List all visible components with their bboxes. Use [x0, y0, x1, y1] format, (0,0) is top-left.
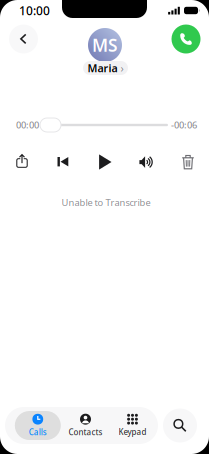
button[interactable]: Call	[171, 24, 200, 53]
button[interactable]: Delete	[173, 148, 203, 176]
staticText: Keypad	[118, 427, 146, 437]
button[interactable]: Contacts	[62, 411, 108, 440]
button[interactable]: Maria	[83, 61, 128, 75]
staticText: Maria	[87, 61, 117, 75]
button[interactable]: Back	[9, 24, 38, 53]
staticText: 10:00	[19, 2, 50, 18]
button[interactable]: Share	[7, 147, 37, 175]
button[interactable]: Play	[90, 148, 120, 176]
button[interactable]: Keypad	[109, 411, 155, 440]
button[interactable]: Speaker	[131, 148, 161, 176]
button[interactable]: Previous	[48, 148, 78, 176]
staticText: MS	[92, 33, 118, 56]
staticText: Unable to Transcribe	[61, 196, 150, 209]
button[interactable]: Calls	[15, 411, 61, 440]
button[interactable]: Search	[163, 408, 197, 442]
staticText: Contacts	[68, 427, 102, 437]
staticText: ›	[120, 61, 123, 75]
staticText: -00:06	[171, 119, 197, 131]
staticText: Calls	[29, 427, 47, 437]
staticText: 00:00	[16, 119, 39, 131]
